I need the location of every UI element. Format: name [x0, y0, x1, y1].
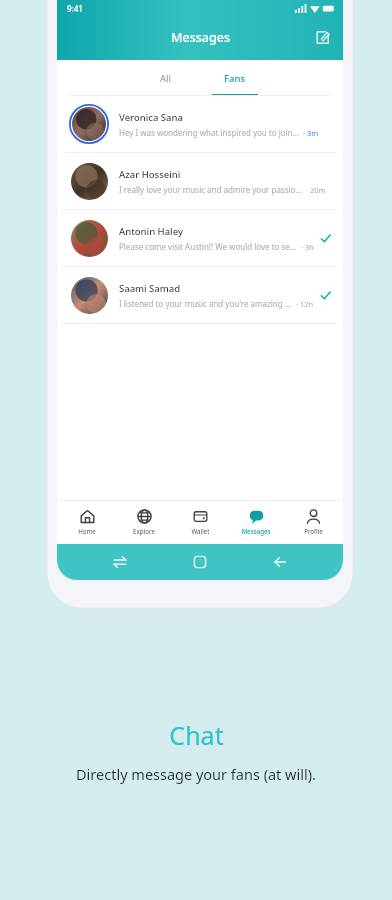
staticText: All — [160, 72, 171, 85]
staticText: Veronica Sana — [119, 111, 183, 124]
button[interactable]: All — [130, 60, 200, 96]
staticText: Azar Hosseini — [119, 168, 181, 181]
staticText: Profile — [304, 527, 323, 535]
staticText: Saami Samad — [119, 282, 181, 295]
staticText: Antonin Haley — [119, 225, 183, 238]
button[interactable]: Wallet — [174, 500, 226, 544]
button[interactable]: Home — [61, 500, 113, 544]
staticText: 9:41 — [67, 3, 83, 14]
staticText: · 20m — [306, 185, 326, 195]
staticText: Messages — [171, 29, 230, 46]
button[interactable]: Fans — [200, 60, 270, 96]
button[interactable]: Profile — [287, 500, 339, 544]
staticText: Explore — [133, 527, 155, 535]
staticText: · 3m — [303, 128, 319, 138]
staticText: Hey I was wondering what inspired you to… — [119, 127, 299, 138]
staticText: Wallet — [191, 527, 210, 535]
staticText: Fans — [224, 72, 246, 85]
staticText: Messages — [241, 527, 271, 535]
staticText: Directly message your fans (at will). — [76, 764, 316, 784]
button[interactable]: Messages — [230, 500, 282, 544]
button[interactable]: Azar Hosseini — [57, 153, 343, 210]
staticText: I listened to your music and you're amaz… — [119, 298, 292, 309]
staticText: · 3h — [301, 242, 314, 252]
button[interactable]: Recents — [103, 545, 137, 579]
button[interactable]: Home — [183, 545, 217, 579]
staticText: Home — [78, 527, 96, 535]
staticText: I really love your music and admire your… — [119, 184, 302, 195]
button[interactable]: Compose message — [311, 26, 333, 48]
staticText: Please come visit Austin!! We would love… — [119, 241, 297, 252]
button[interactable]: Antonin Haley — [57, 210, 343, 267]
button[interactable]: Explore — [118, 500, 170, 544]
staticText: · 12h — [296, 299, 314, 309]
staticText: Chat — [169, 718, 224, 752]
button[interactable]: Back — [263, 545, 297, 579]
button[interactable]: Saami Samad — [57, 267, 343, 324]
button[interactable]: Veronica Sana — [57, 96, 343, 153]
